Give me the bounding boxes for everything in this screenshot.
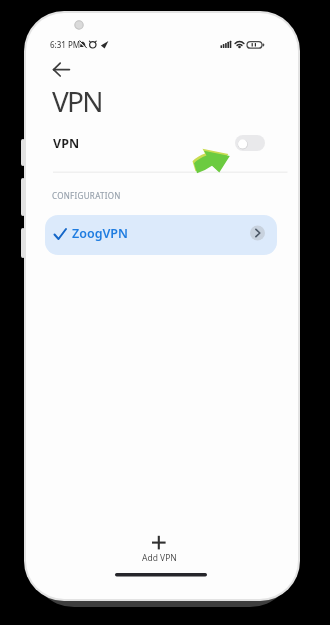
button[interactable] [133, 529, 185, 567]
button[interactable] [45, 126, 277, 160]
staticText: VPN [52, 82, 102, 120]
button[interactable]: ZoogVPN [45, 215, 277, 255]
button[interactable] [46, 57, 76, 83]
staticText: VPN [53, 135, 80, 152]
staticText: Add VPN [142, 552, 177, 564]
staticText: 6:31 PM [50, 39, 81, 50]
staticText: CONFIGURATION [52, 190, 121, 201]
staticText: ZoogVPN [72, 225, 128, 242]
